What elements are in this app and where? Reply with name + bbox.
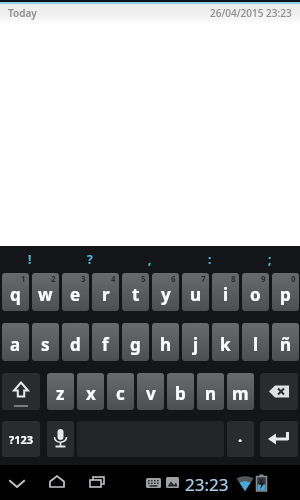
staticText: h [160,333,172,356]
button[interactable] [2,373,40,410]
button[interactable]: a [2,323,29,361]
button[interactable]: s [32,323,59,361]
staticText: a [10,333,21,356]
button[interactable]: e [62,273,89,311]
staticText: 0 [291,273,296,284]
staticText: ?123 [9,432,34,447]
staticText: v [146,382,156,405]
staticText: f [102,333,109,356]
button[interactable]: ?123 [2,421,40,457]
staticText: j [193,333,199,356]
staticText: , [148,251,152,267]
button[interactable]: b [167,373,194,410]
staticText: k [220,333,231,356]
staticText: i [223,283,229,306]
button[interactable]: q [2,273,29,311]
staticText: e [70,283,81,306]
staticText: u [190,283,202,306]
button[interactable]: c [107,373,134,410]
button[interactable]: z [47,373,74,410]
staticText: o [250,283,261,306]
button[interactable]: v [137,373,164,410]
staticText: l [253,333,259,356]
staticText: r [102,283,110,306]
button[interactable]: . [227,421,254,457]
staticText: Today [8,6,37,20]
staticText: ! [28,251,32,267]
staticText: c [116,382,125,405]
button[interactable] [3,473,31,495]
button[interactable] [47,421,74,457]
button[interactable] [83,473,111,495]
staticText: 3 [81,273,86,284]
button[interactable]: ñ [272,323,299,361]
button[interactable]: k [212,323,239,361]
staticText: ñ [280,333,292,356]
staticText: 1 [21,273,26,284]
staticText: ? [87,251,93,267]
staticText: 2 [51,273,56,284]
staticText: x [86,382,96,405]
staticText: 23:23 [185,473,229,496]
button[interactable]: j [182,323,209,361]
button[interactable]: , [120,246,180,271]
button[interactable]: w [32,273,59,311]
button[interactable] [260,421,298,457]
staticText: t [132,283,140,306]
staticText: . [238,426,243,446]
button[interactable]: ! [0,246,60,271]
button[interactable] [43,473,71,495]
staticText: z [56,382,65,405]
staticText: 8 [231,273,236,284]
staticText: d [70,333,81,356]
staticText: s [41,333,50,356]
button[interactable]: d [62,323,89,361]
button[interactable]: x [77,373,104,410]
staticText: 9 [261,273,266,284]
button[interactable]: ? [60,246,120,271]
button[interactable]: g [122,323,149,361]
staticText: g [130,333,141,356]
button[interactable]: r [92,273,119,311]
button[interactable]: h [152,323,179,361]
button[interactable]: f [92,323,119,361]
staticText: y [161,283,171,306]
button[interactable]: t [122,273,149,311]
button[interactable]: y [152,273,179,311]
button[interactable]: p [272,273,299,311]
button[interactable]: : [180,246,240,271]
staticText: 26/04/2015 23:23 [210,6,292,20]
button[interactable]: m [227,373,254,410]
staticText: 7 [201,273,206,284]
staticText: b [175,382,186,405]
button[interactable] [260,373,298,410]
button[interactable]: ; [240,246,300,271]
button[interactable]: i [212,273,239,311]
staticText: n [205,382,217,405]
staticText: m [232,382,249,405]
button[interactable]: n [197,373,224,410]
button[interactable]: u [182,273,209,311]
button[interactable]: l [242,323,269,361]
staticText: q [10,283,21,306]
staticText: 5 [141,273,146,284]
staticText: 6 [171,273,176,284]
staticText: p [280,283,291,306]
staticText: 4 [111,273,116,284]
staticText: w [38,283,53,306]
button[interactable]: o [242,273,269,311]
staticText: ; [268,251,272,267]
staticText: : [208,251,212,267]
